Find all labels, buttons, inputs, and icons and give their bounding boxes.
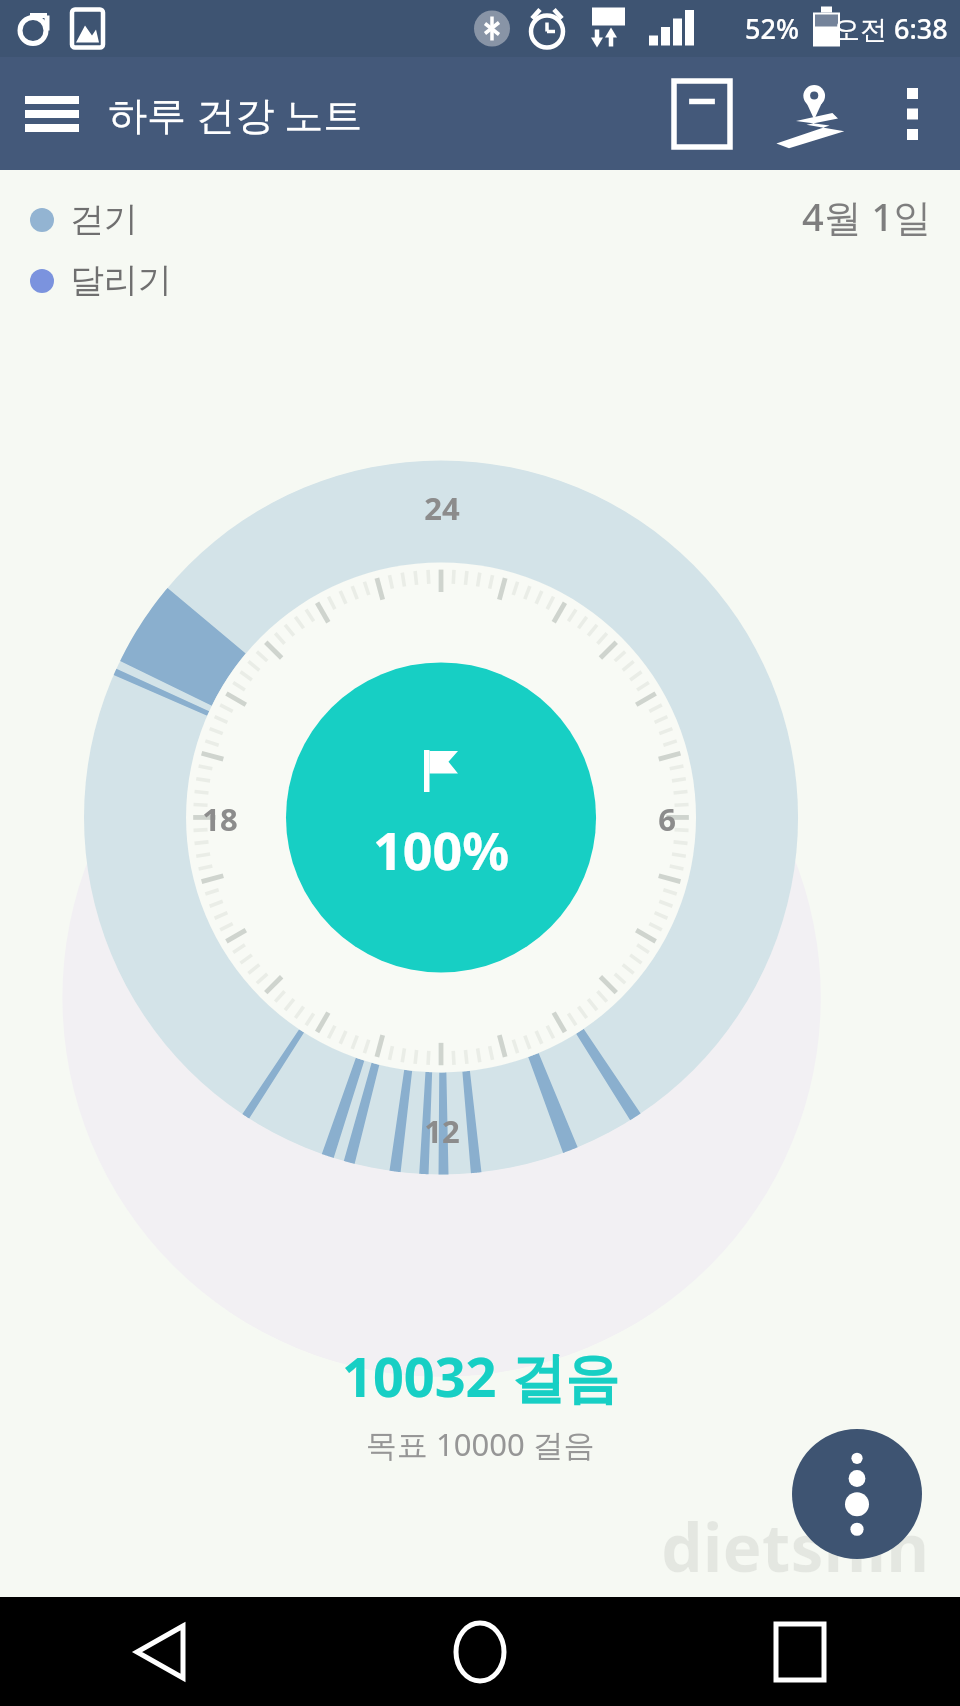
staticText: 12	[424, 1110, 460, 1152]
staticText: 달리기	[70, 259, 172, 302]
staticText: 100%	[373, 814, 510, 885]
button[interactable]: Route map	[756, 57, 864, 170]
staticText: 하루 건강 노트	[108, 87, 363, 140]
staticText: 6	[658, 798, 676, 840]
button[interactable]: Expand actions	[792, 1429, 922, 1559]
button[interactable]: Recent apps	[640, 1597, 960, 1706]
button[interactable]: 걷기	[28, 196, 140, 243]
staticText: 걷기	[70, 198, 138, 241]
staticText: 목표 10000 걸음	[366, 1423, 595, 1465]
staticText: 4월 1일	[802, 190, 932, 242]
staticText: 걸음	[511, 1345, 619, 1413]
staticText: 10032	[342, 1339, 511, 1413]
button[interactable]: More options	[864, 57, 960, 170]
button[interactable]: Back	[0, 1597, 320, 1706]
staticText: 24	[424, 487, 460, 529]
staticText: dietshin	[661, 1501, 930, 1591]
button[interactable]: Navigation drawer	[0, 57, 104, 170]
staticText: 52%	[745, 10, 799, 47]
button[interactable]: Calendar	[648, 57, 756, 170]
button[interactable]: 달리기	[28, 257, 174, 304]
staticText: 18	[202, 798, 238, 840]
button[interactable]: Home	[320, 1597, 640, 1706]
staticText: 오전 6:38	[833, 10, 948, 47]
